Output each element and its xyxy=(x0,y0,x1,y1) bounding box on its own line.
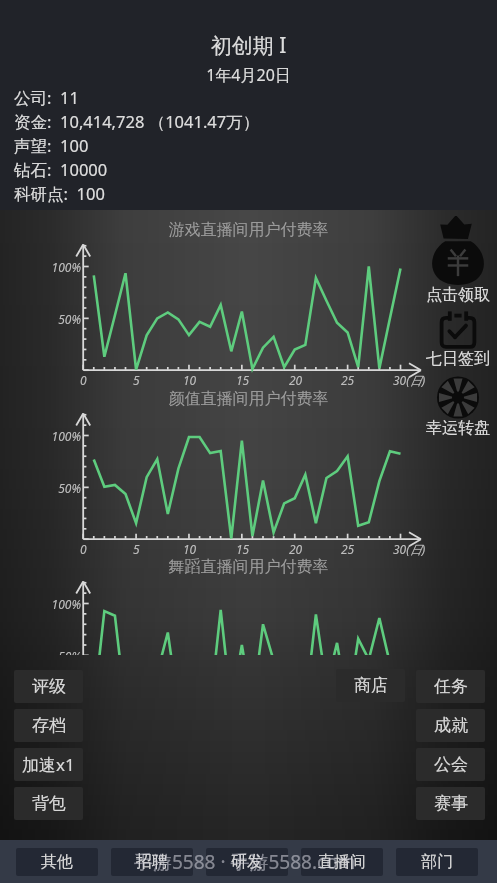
staticText: 赛事 xyxy=(434,793,468,814)
staticText: 20 xyxy=(289,541,303,557)
staticText: 20 xyxy=(289,372,303,388)
button[interactable]: 招聘 xyxy=(111,848,193,876)
staticText: 100% xyxy=(31,596,81,612)
staticText: 50% xyxy=(31,480,81,496)
staticText: 成就 xyxy=(434,715,468,736)
other: 七日签到 xyxy=(438,309,478,349)
staticText: 资金: 10,414,728 （1041.47万） xyxy=(14,110,260,134)
staticText: 舞蹈直播间用户付费率 xyxy=(0,557,497,577)
staticText: 幸运转盘 xyxy=(426,418,490,439)
staticText: 部门 xyxy=(421,852,453,872)
staticText: 点击领取 xyxy=(426,285,490,306)
staticText: 研发 xyxy=(231,852,263,872)
staticText: 任务 xyxy=(434,676,468,697)
staticText: 游戏直播间用户付费率 xyxy=(0,220,497,240)
staticText: 存档 xyxy=(32,715,66,736)
button[interactable]: 赛事 xyxy=(416,787,485,820)
staticText: 15 xyxy=(236,541,250,557)
staticText: 50% xyxy=(31,648,81,655)
staticText: 0 xyxy=(80,541,87,557)
other: 点击领取 xyxy=(426,214,490,285)
button[interactable]: 其他 xyxy=(16,848,98,876)
staticText: 招聘 xyxy=(136,852,168,872)
staticText: 10 xyxy=(183,372,197,388)
staticText: 初创期 I xyxy=(0,31,497,60)
staticText: 100% xyxy=(31,259,81,275)
button[interactable]: 成就 xyxy=(416,709,485,742)
staticText: 50% xyxy=(31,311,81,327)
staticText: 直播间 xyxy=(318,852,366,872)
staticText: 颜值直播间用户付费率 xyxy=(0,389,497,409)
button[interactable]: 公会 xyxy=(416,748,485,781)
staticText: 25 xyxy=(341,372,355,388)
button[interactable]: 七日签到 xyxy=(426,309,490,370)
button[interactable]: 任务 xyxy=(416,670,485,703)
staticText: 5 xyxy=(133,372,140,388)
staticText: 0 xyxy=(80,372,87,388)
staticText: 钻石: 10000 xyxy=(14,158,108,182)
staticText: 100% xyxy=(31,428,81,444)
button[interactable]: 评级 xyxy=(14,670,83,703)
button[interactable]: 商店 xyxy=(336,669,405,702)
staticText: 25 xyxy=(341,541,355,557)
button[interactable]: 部门 xyxy=(396,848,478,876)
button[interactable]: 研发 xyxy=(206,848,288,876)
staticText: 30(日) xyxy=(393,541,426,557)
staticText: 科研点: 100 xyxy=(14,182,105,206)
staticText: 30(日) xyxy=(393,372,426,388)
button[interactable]: 直播间 xyxy=(301,848,383,876)
other: 幸运转盘 xyxy=(437,377,479,418)
staticText: 声望: 100 xyxy=(14,134,89,158)
staticText: 其他 xyxy=(41,852,73,872)
staticText: 评级 xyxy=(32,676,66,697)
button[interactable]: 幸运转盘 xyxy=(426,377,490,439)
staticText: 商店 xyxy=(354,675,388,696)
staticText: 5 xyxy=(133,541,140,557)
staticText: 手游5588 · 手游5588.com xyxy=(134,849,356,875)
button[interactable]: 加速x1 xyxy=(14,748,83,781)
staticText: 1年4月20日 xyxy=(0,64,497,86)
button[interactable]: 点击领取 xyxy=(426,214,490,306)
staticText: 15 xyxy=(236,372,250,388)
staticText: 背包 xyxy=(32,793,66,814)
staticText: 10 xyxy=(183,541,197,557)
staticText: 加速x1 xyxy=(22,753,75,776)
button[interactable]: 存档 xyxy=(14,709,83,742)
staticText: 公司: 11 xyxy=(14,86,79,110)
button[interactable]: 背包 xyxy=(14,787,83,820)
staticText: 公会 xyxy=(434,754,468,775)
staticText: 七日签到 xyxy=(426,349,490,370)
